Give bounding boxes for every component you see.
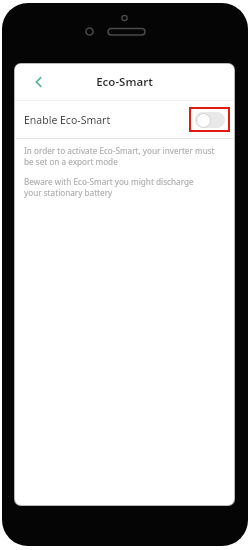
button[interactable]: Back [23, 66, 55, 98]
staticText: In order to activate Eco-Smart, your inv… [24, 145, 222, 167]
button[interactable]: Enable Eco-Smart toggle [195, 112, 225, 128]
staticText: Beware with Eco-Smart you might discharg… [24, 176, 204, 198]
button[interactable]: Enable Eco-Smart [15, 101, 234, 138]
staticText: Eco-Smart [15, 74, 234, 90]
staticText: Enable Eco-Smart [24, 113, 189, 127]
